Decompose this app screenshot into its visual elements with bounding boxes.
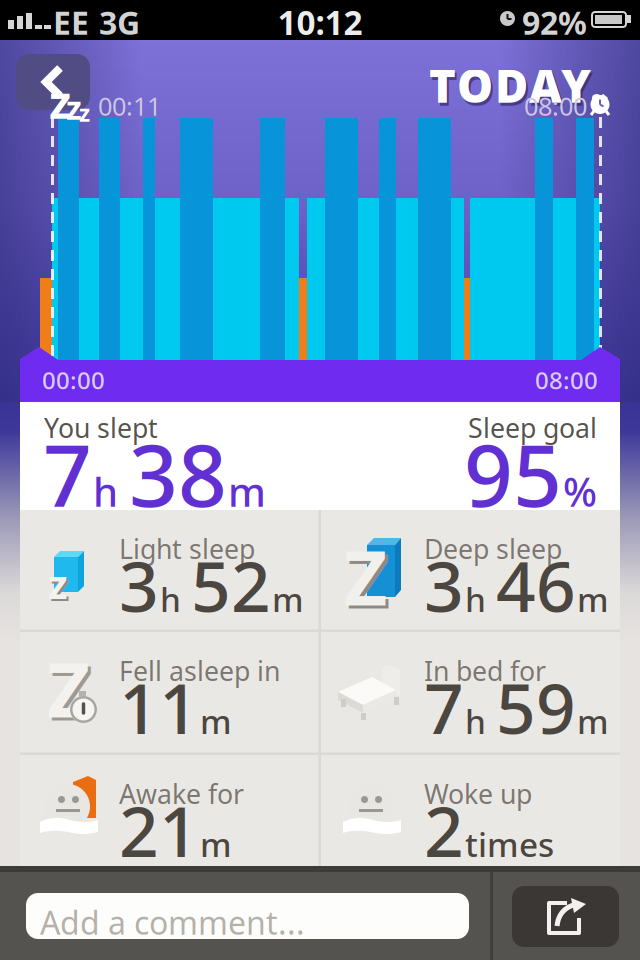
- staticText: z: [49, 71, 71, 131]
- staticText: 11: [119, 661, 199, 753]
- staticText: z: [79, 98, 90, 128]
- staticText: 7: [424, 661, 464, 753]
- staticText: Z: [347, 530, 390, 629]
- staticText: h: [93, 465, 128, 518]
- staticText: z: [48, 557, 68, 610]
- staticText: You slept: [44, 410, 158, 445]
- staticText: 3: [424, 539, 464, 631]
- staticText: m: [200, 699, 232, 743]
- staticText: Light sleep: [119, 531, 255, 566]
- staticText: Z: [50, 642, 93, 741]
- staticText: Fell asleep in: [119, 653, 280, 688]
- staticText: 10:12: [277, 0, 362, 44]
- staticText: %: [563, 465, 597, 518]
- staticText: 3: [119, 539, 159, 631]
- staticText: Awake for: [119, 776, 244, 811]
- staticText: 00:11: [98, 89, 161, 123]
- staticText: Add a comment...: [40, 901, 305, 943]
- staticText: times: [465, 822, 554, 866]
- staticText: In bed for: [424, 653, 546, 688]
- staticText: 2: [424, 784, 464, 876]
- staticText: Deep sleep: [424, 531, 562, 566]
- staticText: 59: [496, 661, 576, 753]
- button[interactable]: Share: [512, 886, 619, 947]
- staticText: h: [465, 699, 495, 743]
- button[interactable]: Back: [16, 54, 90, 110]
- staticText: 00:00: [42, 364, 105, 396]
- staticText: EE: [53, 1, 89, 43]
- staticText: 95: [464, 417, 562, 530]
- staticText: Z: [47, 639, 90, 738]
- staticText: Woke up: [424, 776, 532, 811]
- staticText: 92%: [522, 1, 587, 43]
- staticText: h: [160, 577, 190, 621]
- staticText: 3G: [99, 1, 140, 43]
- staticText: m: [200, 822, 232, 866]
- staticText: TODAY.: [429, 55, 603, 115]
- staticText: Sleep goal: [468, 410, 597, 445]
- staticText: 52: [191, 539, 271, 631]
- staticText: 08:00: [535, 364, 598, 396]
- staticText: 46: [496, 539, 576, 631]
- button[interactable]: Add a comment: [26, 893, 469, 939]
- staticText: 21: [119, 784, 199, 876]
- staticText: 38: [129, 417, 227, 530]
- staticText: m: [228, 465, 266, 518]
- staticText: m: [577, 577, 609, 621]
- staticText: z: [50, 559, 70, 612]
- staticText: 08:00: [524, 89, 587, 123]
- staticText: m: [272, 577, 304, 621]
- staticText: m: [577, 699, 609, 743]
- staticText: z: [66, 86, 82, 128]
- staticText: Z: [344, 527, 387, 626]
- staticText: 7: [43, 417, 92, 530]
- staticText: h: [465, 577, 495, 621]
